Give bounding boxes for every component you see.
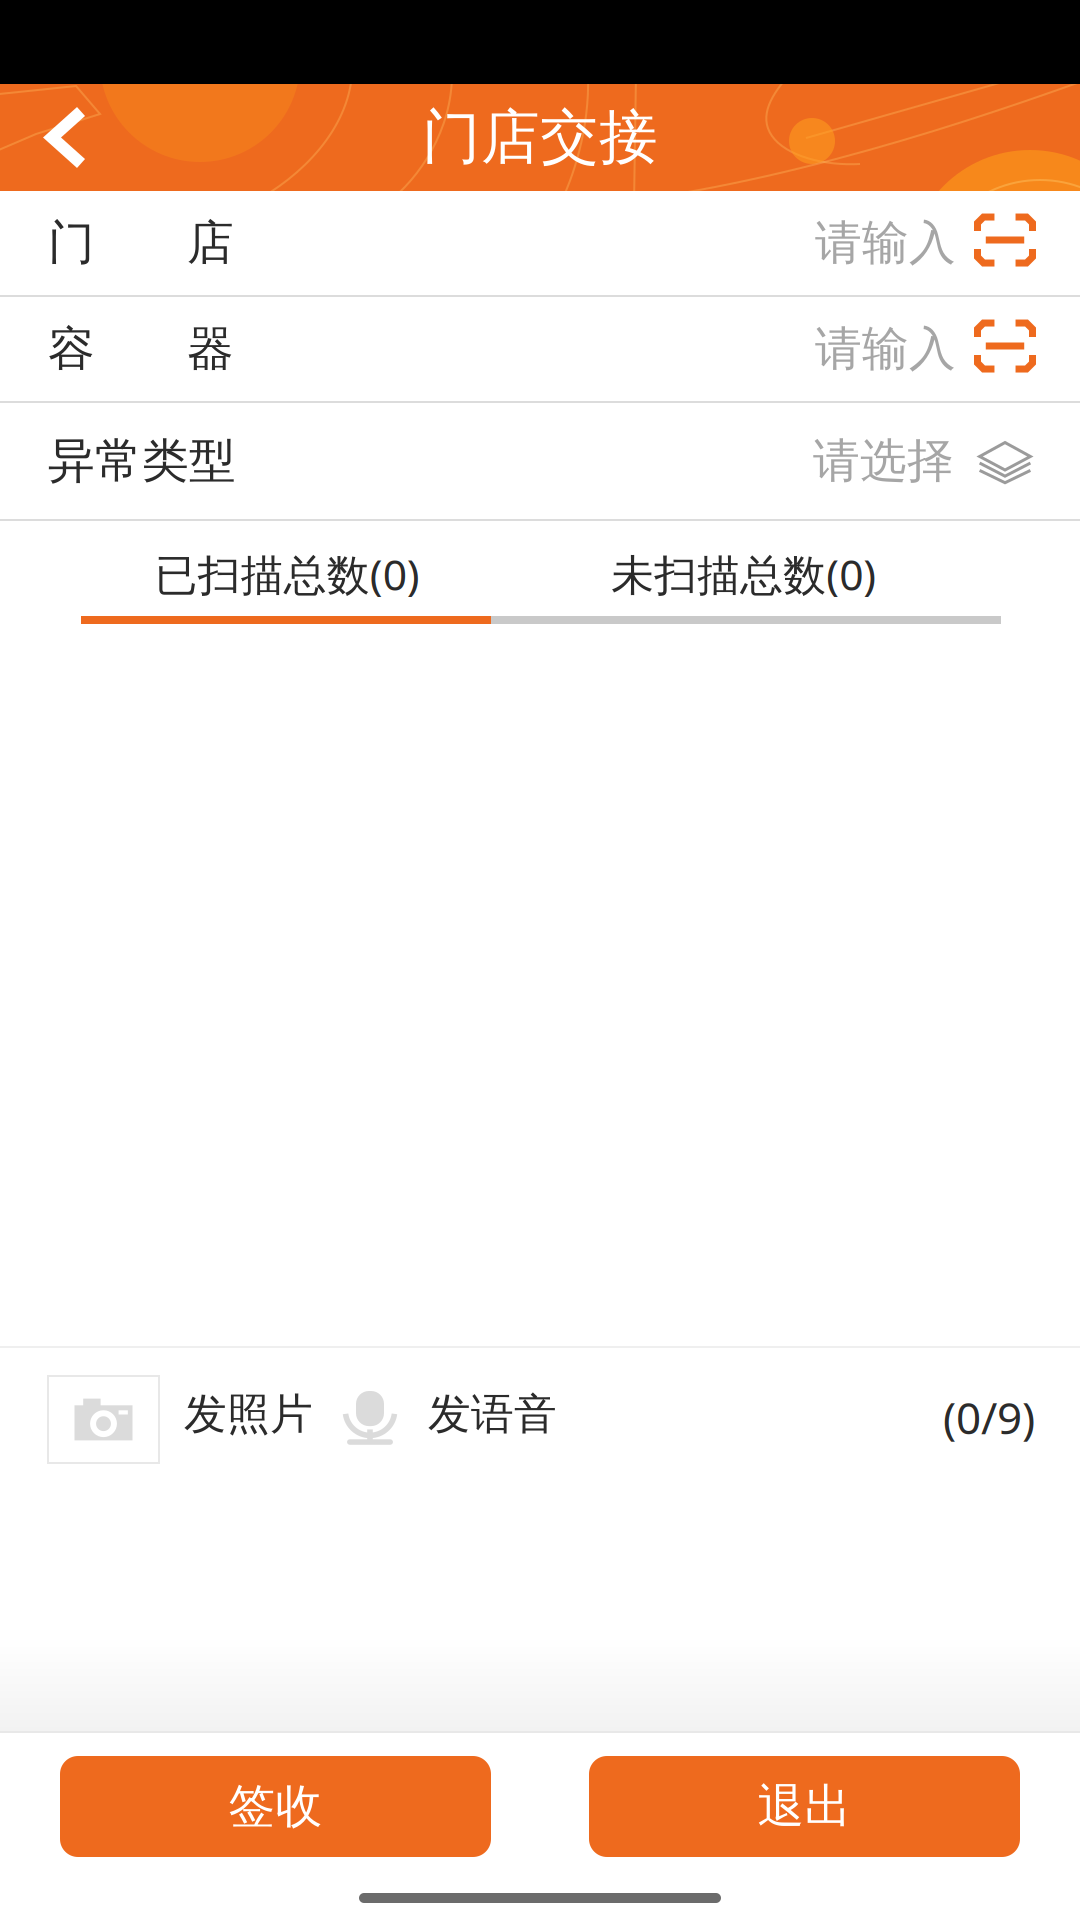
staticText: 已扫描总数(0) <box>155 546 420 602</box>
button[interactable]: 签收 <box>60 1756 491 1857</box>
button[interactable]: 发照片 <box>48 1348 159 1463</box>
button[interactable]: 选择异常类型 <box>954 440 1036 481</box>
staticText: 异常类型 <box>48 432 236 490</box>
staticText: 请选择 <box>813 432 954 490</box>
button[interactable]: 容 <box>0 297 1080 403</box>
staticText: 器 <box>187 320 234 378</box>
staticText: 请输入 <box>815 214 956 272</box>
staticText: 发照片 <box>184 1388 313 1440</box>
staticText: 容 <box>48 320 95 378</box>
button[interactable]: 发照片 <box>159 1348 313 1440</box>
button[interactable]: 扫描容器 <box>956 319 1036 378</box>
staticText: 未扫描总数(0) <box>611 546 876 602</box>
button[interactable]: 发语音 <box>313 1348 398 1446</box>
staticText: 请输入 <box>815 320 956 378</box>
staticText: 店 <box>187 214 234 272</box>
staticText: 门店交接 <box>422 101 658 174</box>
button[interactable]: 发语音 <box>398 1348 557 1440</box>
staticText: 门 <box>48 214 95 272</box>
staticText: 签收 <box>228 1778 322 1835</box>
button[interactable]: 门 <box>0 191 1080 297</box>
button[interactable]: 扫描门店 <box>956 213 1036 272</box>
button[interactable]: 退出 <box>589 1756 1020 1857</box>
staticText: (0/9) <box>943 1388 1035 1446</box>
staticText: 发语音 <box>428 1388 557 1440</box>
button[interactable]: 已扫描总数(0) <box>59 532 515 616</box>
button[interactable]: Back <box>0 84 112 191</box>
staticText: 退出 <box>757 1778 851 1835</box>
button[interactable]: 未扫描总数(0) <box>515 532 972 616</box>
button[interactable]: 异常类型 <box>0 403 1080 521</box>
